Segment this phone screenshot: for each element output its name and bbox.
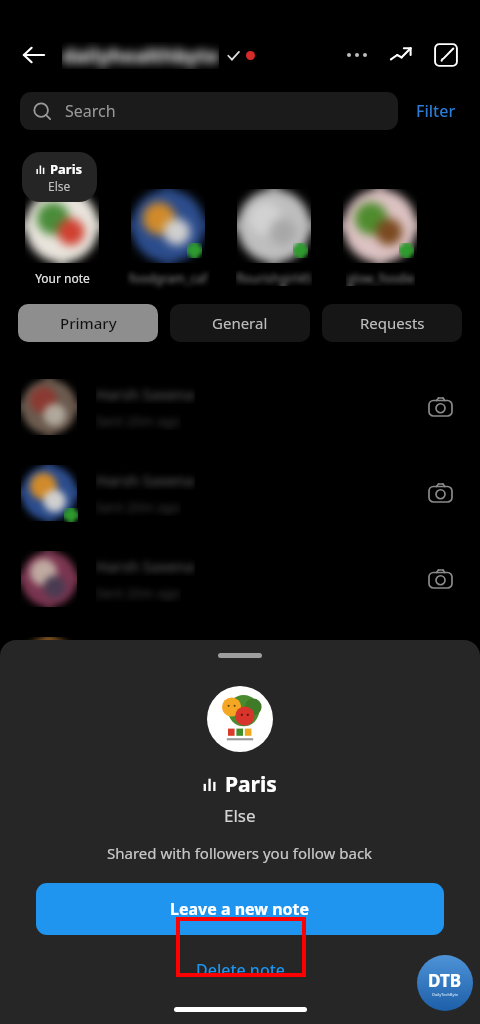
button[interactable]: Camera	[420, 473, 460, 513]
staticText: DTB	[428, 969, 462, 992]
button[interactable]: Leave a new note	[36, 883, 444, 935]
staticText: Harsh Saxena	[96, 556, 195, 576]
button[interactable]: Harsh Saxena	[0, 450, 480, 536]
button[interactable]: foodgram_cafe	[126, 188, 210, 292]
button[interactable]: Harsh Saxena	[0, 622, 480, 708]
staticText: General	[212, 313, 268, 333]
staticText: Shared with followers you follow back	[107, 843, 373, 863]
button[interactable]: Filter	[412, 96, 460, 126]
staticText: Filter	[416, 100, 456, 122]
staticText: Harsh Saxena	[96, 384, 195, 404]
staticText: Else	[48, 178, 71, 194]
staticText: Requests	[360, 313, 425, 333]
button[interactable]: Harsh Saxena	[0, 364, 480, 450]
staticText: glow_foodie	[346, 270, 415, 286]
staticText: Leave a new note	[170, 898, 310, 920]
button[interactable]: Insights	[384, 38, 418, 72]
staticText: Sent 20m ago	[96, 584, 181, 602]
staticText: Sent 20m ago	[96, 498, 181, 516]
staticText: Else	[224, 804, 256, 827]
button[interactable]: Camera	[420, 559, 460, 599]
button[interactable]: Camera	[420, 387, 460, 427]
button[interactable]: flourishgirl45	[232, 188, 316, 286]
staticText: foodgram_cafe	[126, 270, 210, 292]
staticText: Harsh Saxena	[96, 470, 195, 490]
button[interactable]: More options	[340, 38, 374, 72]
staticText: Paris	[50, 160, 83, 178]
button[interactable]: Paris	[22, 152, 97, 202]
button[interactable]: Primary	[18, 304, 158, 342]
staticText: flourishgirl45	[236, 270, 312, 286]
button[interactable]: New message	[428, 37, 464, 73]
button[interactable]: General	[170, 304, 310, 342]
button[interactable]: Search	[20, 92, 398, 130]
staticText: Primary	[60, 313, 117, 333]
staticText: DailyTechByte	[432, 992, 459, 997]
button[interactable]: Back	[16, 37, 52, 73]
staticText: Delete note	[196, 959, 285, 981]
staticText: Search	[65, 100, 116, 122]
button[interactable]: Requests	[322, 304, 462, 342]
button[interactable]: Harsh Saxena	[0, 536, 480, 622]
button[interactable]: Your note	[20, 188, 104, 286]
button[interactable]: glow_foodie	[338, 188, 422, 286]
staticText: Your note	[35, 270, 90, 286]
staticText: dailyhealthbyte	[62, 42, 219, 69]
button[interactable]: Delete note	[179, 944, 302, 996]
staticText: Sent 20m ago	[96, 412, 181, 430]
staticText: Paris	[225, 770, 277, 799]
